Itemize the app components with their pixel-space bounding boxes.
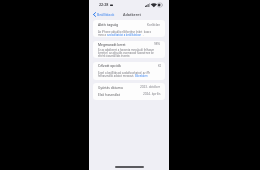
staticText: 22:28 xyxy=(99,2,109,7)
staticText: 98% xyxy=(154,42,161,46)
staticText: felhasználói adatot megoszt. xyxy=(98,74,135,77)
other: Back xyxy=(93,12,96,17)
staticText: Gyártás dátuma xyxy=(98,85,123,89)
staticText: 2023. október xyxy=(140,85,161,89)
staticText: . xyxy=(142,33,144,36)
staticText: Aktív tagság xyxy=(98,22,119,27)
staticText: Korlátlan xyxy=(147,23,161,27)
staticText: szolgáltatást a beállításban xyxy=(107,33,142,36)
button[interactable]: Gyártás dátuma xyxy=(93,83,165,90)
staticText: meg a xyxy=(98,33,107,36)
staticText: Első használat xyxy=(98,92,120,96)
staticText: kerettel, az aktuális csomagod függvénye… xyxy=(98,51,154,54)
staticText: Adatkeret xyxy=(123,12,141,17)
button[interactable]: Back xyxy=(89,9,118,19)
button[interactable]: Célzott opciók xyxy=(93,62,165,80)
staticText: eltérő összeállítás évente. xyxy=(98,54,131,57)
staticText: 2024. április xyxy=(143,92,161,96)
staticText: Bővebben xyxy=(135,74,148,77)
staticText: Megmaradt keret xyxy=(98,42,126,46)
staticText: Az iPhone aktuális előfizetése lejárt, k… xyxy=(98,30,151,33)
staticText: Célzott opciók xyxy=(98,63,121,68)
staticText: Ez az adatkeret a havonta megújuló felha… xyxy=(98,48,155,51)
button[interactable]: Első használat xyxy=(93,90,165,98)
button[interactable]: Megmaradt keret xyxy=(93,41,165,58)
staticText: Ezzel a beállítással szabályozhatod, az … xyxy=(98,71,151,74)
staticText: Beállítások xyxy=(97,12,115,17)
button[interactable]: Aktív tagság xyxy=(93,20,165,37)
staticText: KI xyxy=(158,64,161,68)
